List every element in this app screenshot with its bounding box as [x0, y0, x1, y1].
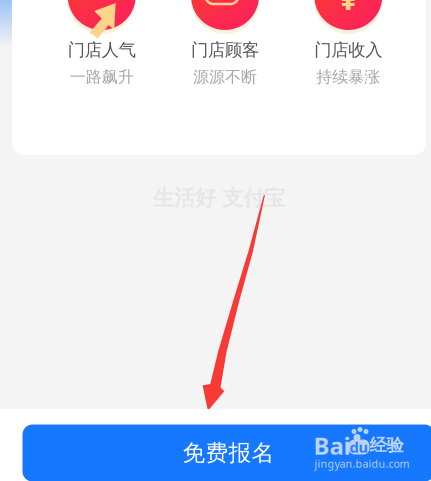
staticText: jingyan.baidu.com	[314, 456, 409, 471]
staticText: du	[349, 437, 368, 457]
staticText: 免费报名	[182, 439, 274, 467]
staticText: 持续暴涨	[316, 67, 380, 87]
staticText: 源源不断	[193, 67, 257, 87]
button[interactable]: 免费报名	[22, 424, 431, 481]
staticText: 门店人气	[68, 39, 136, 61]
staticText: 门店收入	[314, 39, 382, 61]
staticText: ¥	[339, 0, 358, 19]
staticText: 经验	[369, 434, 403, 456]
staticText: 门店顾客	[191, 39, 259, 61]
staticText: 生活好 支付宝	[153, 185, 285, 211]
staticText: Bai	[313, 429, 350, 461]
staticText: 一路飙升	[70, 67, 134, 87]
